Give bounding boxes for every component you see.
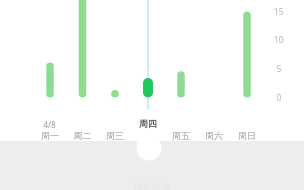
button[interactable]: 周五 [165,0,197,140]
button[interactable]: 周三 [99,0,131,140]
button[interactable]: 周日 [231,0,263,140]
button[interactable]: 周二 [67,0,99,140]
button[interactable]: 展开详细数据 [136,135,162,161]
button[interactable]: 周六 [198,0,230,140]
button[interactable]: 周四 [132,0,164,140]
button[interactable]: 周一 [34,0,66,140]
